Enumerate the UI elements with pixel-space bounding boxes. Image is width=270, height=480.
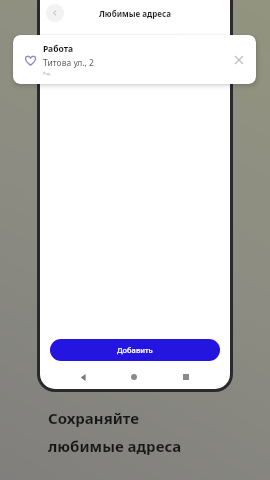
staticText: Сохраняйте — [48, 408, 140, 428]
staticText: Любимые адреса — [99, 8, 171, 19]
button[interactable]: Home — [126, 370, 142, 384]
button[interactable]: Remove — [231, 52, 247, 68]
staticText: Титова ул., 2 — [43, 57, 94, 69]
staticText: любимые адреса — [48, 436, 182, 456]
button[interactable]: Добавить — [50, 339, 220, 361]
staticText: Работа — [43, 43, 74, 55]
button[interactable]: Работа — [13, 35, 256, 84]
button[interactable]: Back — [75, 370, 91, 384]
button[interactable]: Back — [46, 4, 64, 22]
staticText: Ряд — [43, 71, 51, 76]
button[interactable]: Recents — [178, 370, 194, 384]
staticText: Добавить — [117, 345, 153, 355]
